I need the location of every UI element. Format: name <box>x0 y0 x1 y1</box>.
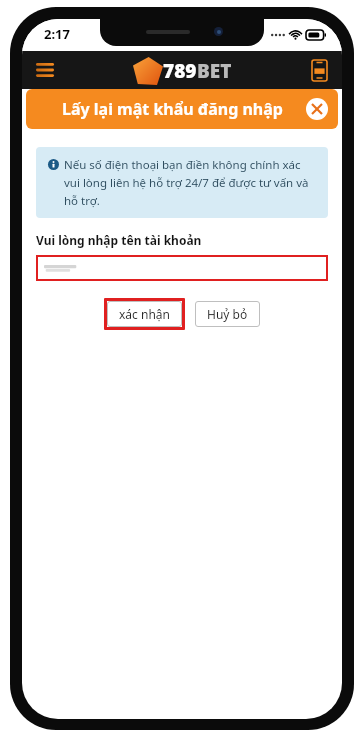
staticText: 789 <box>163 58 197 84</box>
button[interactable]: Huỷ bỏ <box>195 301 260 327</box>
button[interactable]: Close <box>306 98 328 120</box>
button[interactable]: Menu <box>32 57 58 83</box>
staticText: 2:17 <box>44 25 70 43</box>
staticText: xác nhận <box>119 306 170 322</box>
staticText: Huỷ bỏ <box>207 306 248 322</box>
staticText: Vui lòng nhập tên tài khoản <box>36 232 202 248</box>
staticText: Nếu số điện thoại bạn điền không chính x… <box>64 157 316 208</box>
button[interactable]: xác nhận <box>107 301 182 327</box>
button[interactable]: Lấy lại mật khẩu đăng nhập <box>26 89 338 129</box>
staticText: Lấy lại mật khẩu đăng nhập <box>62 98 283 120</box>
button[interactable]: App download <box>306 57 332 83</box>
button[interactable] <box>36 255 328 281</box>
staticText: BET <box>197 58 232 84</box>
